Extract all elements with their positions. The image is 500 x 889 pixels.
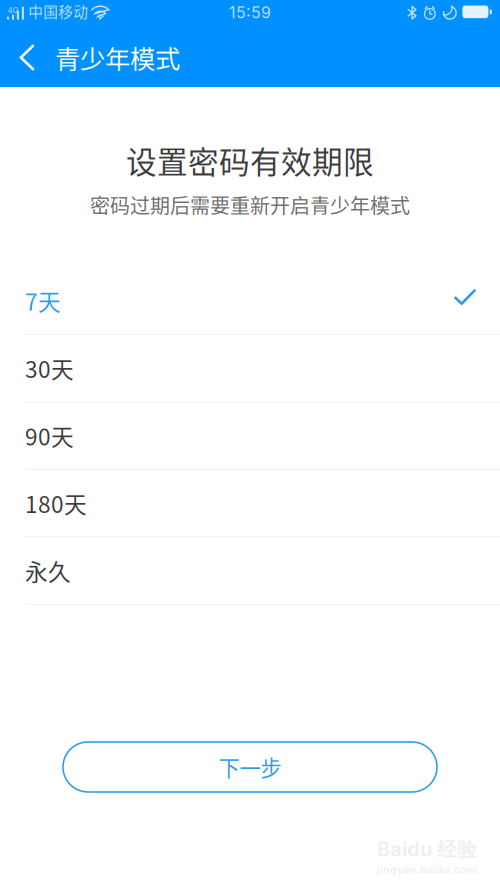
button[interactable]: 7天 (0, 267, 500, 335)
staticText: Baidu 经验 (377, 837, 477, 862)
button[interactable]: 下一步 (63, 742, 437, 792)
staticText: 7天 (25, 284, 61, 317)
button[interactable]: 30天 (0, 335, 500, 402)
staticText: 180天 (25, 487, 87, 519)
staticText: 30天 (25, 352, 74, 384)
staticText: 中国移动 (28, 0, 88, 22)
button[interactable]: 90天 (0, 402, 500, 470)
staticText: 15:59 (229, 3, 271, 22)
staticText: 设置密码有效期限 (126, 138, 374, 182)
staticText: 永久 (25, 554, 71, 587)
staticText: 4G (7, 6, 18, 15)
staticText: jingyan.baidu.com (377, 863, 477, 876)
button[interactable]: 180天 (0, 470, 500, 537)
button[interactable]: 永久 (0, 537, 500, 605)
staticText: 下一步 (218, 752, 281, 782)
staticText: 90天 (25, 419, 74, 452)
staticText: 青少年模式 (55, 39, 180, 76)
staticText: 密码过期后需要重新开启青少年模式 (90, 190, 410, 219)
button[interactable]: 返回 (6, 34, 48, 80)
